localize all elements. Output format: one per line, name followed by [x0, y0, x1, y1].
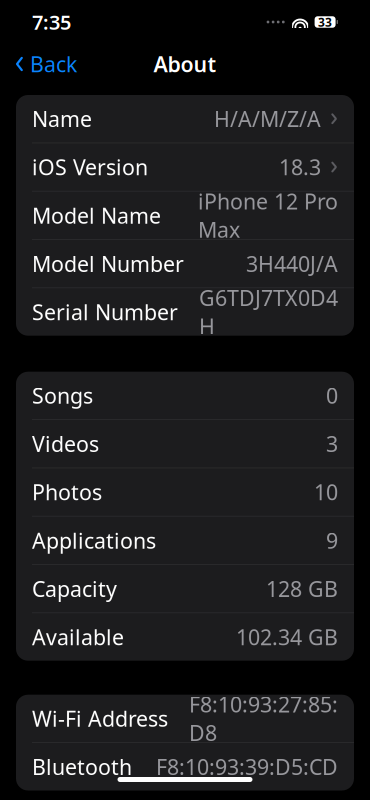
staticText: Model Number	[32, 249, 184, 278]
staticText: 18.3	[279, 153, 321, 181]
staticText: 102.34 GB	[236, 623, 338, 651]
staticText: Bluetooth	[32, 753, 132, 781]
staticText: Photos	[32, 478, 102, 506]
staticText: Name	[32, 105, 92, 133]
button[interactable]: iOS Version	[16, 143, 354, 191]
staticText: 3	[326, 430, 338, 458]
staticText: 128 GB	[266, 574, 338, 603]
staticText: iOS Version	[32, 153, 148, 181]
staticText: 9	[326, 526, 338, 554]
button[interactable]: Bluetooth	[16, 743, 354, 790]
button[interactable]: Model Number	[16, 240, 354, 287]
button[interactable]: Available	[16, 613, 354, 661]
staticText: Capacity	[32, 574, 117, 603]
button[interactable]: Model Name	[16, 192, 354, 239]
staticText: Videos	[32, 430, 99, 458]
staticText: Available	[32, 623, 124, 651]
button[interactable]: Songs	[16, 372, 354, 419]
staticText: F8:10:93:27:85:D8	[189, 690, 338, 747]
staticText: F8:10:93:39:D5:CD	[156, 753, 338, 781]
button[interactable]: Applications	[16, 517, 354, 564]
staticText: 3H440J/A	[246, 249, 338, 278]
staticText: H/A/M/Z/A	[214, 105, 321, 133]
button[interactable]: Capacity	[16, 565, 354, 612]
button[interactable]: Photos	[16, 468, 354, 516]
staticText: Wi-Fi Address	[32, 704, 168, 733]
button[interactable]: Back	[4, 44, 87, 84]
staticText: Applications	[32, 526, 156, 554]
staticText: Back	[30, 50, 77, 78]
staticText: Model Name	[32, 201, 161, 229]
staticText: Serial Number	[32, 298, 178, 326]
button[interactable]: Serial Number	[16, 288, 354, 336]
staticText: 10	[314, 478, 338, 506]
button[interactable]: Videos	[16, 420, 354, 467]
button[interactable]: Name	[16, 95, 354, 142]
staticText: About	[153, 50, 216, 78]
staticText: 0	[326, 381, 338, 410]
staticText: Songs	[32, 381, 93, 410]
staticText: 7:35	[32, 9, 71, 35]
staticText: iPhone 12 Pro Max	[198, 187, 338, 244]
staticText: G6TDJ7TX0D4H	[199, 284, 338, 340]
staticText: 33	[318, 14, 332, 30]
button[interactable]: Wi-Fi Address	[16, 695, 354, 742]
